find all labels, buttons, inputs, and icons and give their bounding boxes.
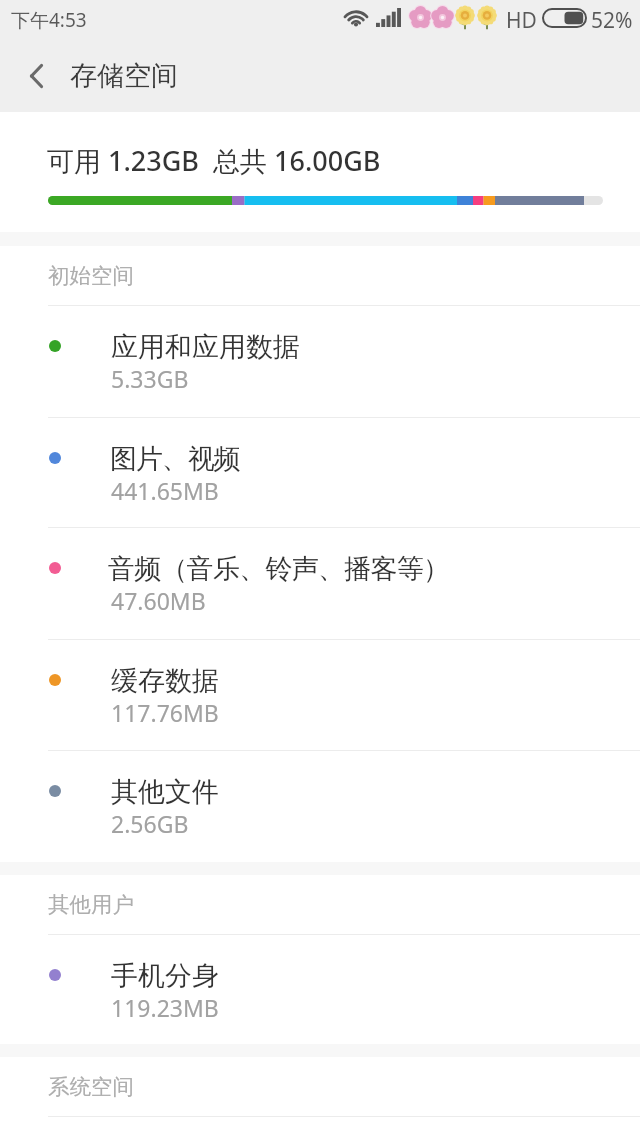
staticText: HD (506, 6, 537, 35)
button[interactable]: 应用和应用数据 (0, 305, 640, 418)
staticText: 441.65MB (111, 475, 219, 506)
staticText: 其他文件 (111, 775, 219, 809)
staticText: 5.33GB (111, 363, 189, 394)
staticText: 其他用户 (48, 891, 134, 918)
staticText: 下午4:53 (11, 7, 87, 33)
staticText: 117.76MB (111, 697, 219, 728)
button[interactable]: 缓存数据 (0, 639, 640, 750)
button[interactable]: 手机分身 (0, 934, 640, 1044)
button[interactable]: 其他文件 (0, 750, 640, 862)
staticText: 2.56GB (111, 808, 189, 839)
staticText: 119.23MB (111, 992, 219, 1023)
staticText: 可用 1.23GB 总共 16.00GB (47, 142, 381, 179)
staticText: 图片、视频 (110, 442, 240, 476)
staticText: 初始空间 (48, 262, 134, 289)
staticText: 系统空间 (48, 1073, 134, 1100)
staticText: 手机分身 (111, 959, 219, 993)
button[interactable]: 图片、视频 (0, 417, 640, 527)
staticText: 缓存数据 (111, 664, 219, 698)
button[interactable]: Back (0, 40, 72, 112)
staticText: 音频（音乐、铃声、播客等） (108, 552, 450, 586)
staticText: 47.60MB (111, 585, 206, 616)
button[interactable]: 音频（音乐、铃声、播客等） (0, 527, 640, 639)
staticText: 应用和应用数据 (111, 330, 300, 364)
staticText: 52% (591, 6, 633, 35)
staticText: 存储空间 (70, 59, 178, 93)
